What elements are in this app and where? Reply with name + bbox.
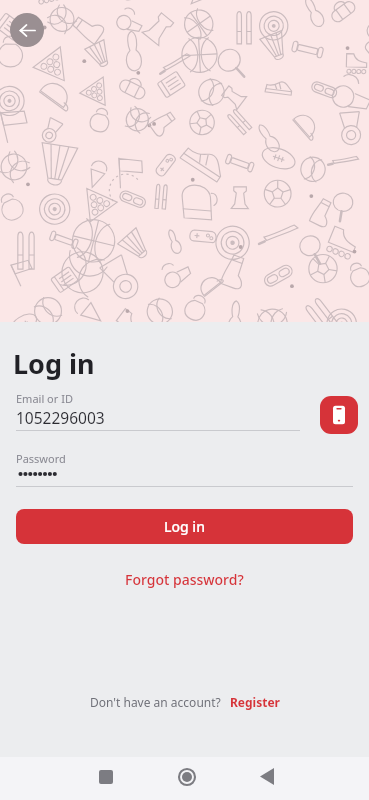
staticText: 1052296003 bbox=[16, 407, 105, 428]
button[interactable]: Forgot password? bbox=[113, 566, 256, 593]
staticText: Password bbox=[16, 451, 66, 466]
button[interactable]: Back bbox=[10, 13, 44, 47]
button[interactable]: Back bbox=[247, 757, 287, 800]
staticText: Email or ID bbox=[16, 391, 73, 406]
button[interactable]: Login with device bbox=[320, 396, 358, 434]
button[interactable]: Recent apps bbox=[86, 757, 126, 800]
button[interactable]: Home bbox=[167, 757, 207, 800]
staticText: Forgot password? bbox=[125, 570, 244, 589]
button[interactable]: Register bbox=[230, 694, 280, 710]
button[interactable]: Log in bbox=[16, 509, 353, 544]
staticText: Log in bbox=[164, 517, 205, 536]
staticText: Log in bbox=[13, 345, 95, 382]
staticText: Don't have an account? bbox=[90, 694, 221, 710]
staticText: Register bbox=[230, 694, 280, 710]
